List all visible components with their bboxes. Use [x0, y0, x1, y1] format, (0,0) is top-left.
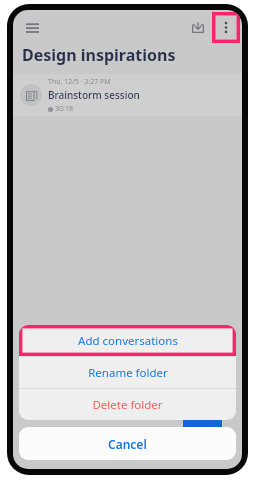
- button[interactable]: Rename folder: [19, 357, 236, 388]
- staticText: Delete folder: [92, 397, 163, 413]
- staticText: Add conversations: [78, 333, 178, 349]
- staticText: Rename folder: [88, 365, 168, 381]
- staticText: Brainstorm session: [48, 88, 140, 102]
- staticText: Design inspirations: [22, 44, 176, 66]
- button[interactable]: Thu, 12/5 · 3:27 PM: [13, 74, 242, 116]
- button[interactable]: Delete folder: [19, 389, 236, 420]
- button[interactable]: New conversation: [183, 410, 222, 428]
- staticText: 30:18: [55, 104, 73, 114]
- button[interactable]: Cancel: [19, 427, 236, 460]
- button[interactable]: Download: [186, 15, 210, 39]
- button[interactable]: More options: [212, 12, 240, 43]
- button[interactable]: Menu: [19, 14, 45, 40]
- staticText: Cancel: [108, 436, 147, 452]
- staticText: Thu, 12/5 · 3:27 PM: [48, 77, 111, 87]
- button[interactable]: Add conversations: [19, 325, 236, 356]
